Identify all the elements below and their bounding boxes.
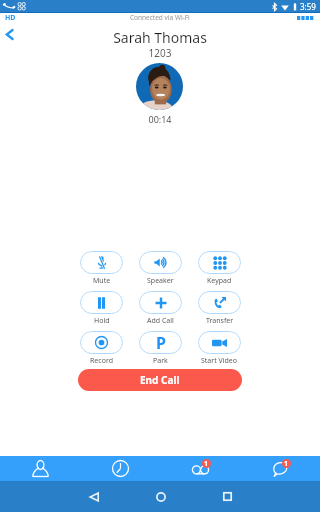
staticText: Speaker <box>147 276 174 286</box>
button[interactable]: Recents <box>80 456 160 481</box>
staticText: Start Video <box>201 356 238 366</box>
button[interactable] <box>80 251 123 274</box>
button[interactable]: End Call <box>78 369 242 391</box>
staticText: 00:14 <box>0 113 320 125</box>
button[interactable]: Messages <box>240 456 320 481</box>
staticText: Record <box>90 356 113 366</box>
staticText: P <box>156 332 166 354</box>
staticText: Add Call <box>147 316 174 326</box>
button[interactable] <box>139 291 182 314</box>
button[interactable] <box>80 331 123 354</box>
staticText: Transfer <box>206 316 234 326</box>
staticText: 1203 <box>0 46 320 60</box>
staticText: 3:59 <box>300 1 316 12</box>
button[interactable]: Voicemail <box>160 456 240 481</box>
button[interactable] <box>198 251 241 274</box>
staticText: HD <box>5 13 16 22</box>
button[interactable]: Back <box>60 481 127 512</box>
staticText: 1 <box>204 459 209 468</box>
button[interactable]: Back <box>1 26 18 43</box>
button[interactable]: Home <box>127 481 194 512</box>
staticText: Hold <box>94 316 110 326</box>
staticText: Mute <box>93 276 111 286</box>
staticText: Connected via Wi-Fi <box>130 13 190 22</box>
button[interactable]: Recent apps <box>194 481 261 512</box>
button[interactable] <box>80 291 123 314</box>
button[interactable] <box>139 251 182 274</box>
staticText: Park <box>153 356 168 366</box>
staticText: Sarah Thomas <box>0 28 320 47</box>
button[interactable] <box>198 331 241 354</box>
button[interactable] <box>198 291 241 314</box>
button[interactable]: Contacts <box>0 456 80 481</box>
staticText: Keypad <box>207 276 232 286</box>
button[interactable]: P <box>139 331 182 354</box>
staticText: 1 <box>284 459 289 468</box>
staticText: End Call <box>140 373 180 387</box>
